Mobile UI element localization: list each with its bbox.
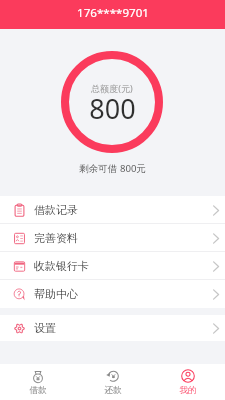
staticText: 我的 (179, 385, 197, 396)
button[interactable]: 设置 (0, 315, 225, 341)
button[interactable]: 帮助中心 (0, 280, 225, 308)
staticText: 总额度(元) (91, 82, 133, 94)
staticText: 借款 (29, 385, 47, 396)
button[interactable]: 收款银行卡 (0, 252, 225, 280)
staticText: 收款银行卡 (34, 259, 89, 273)
button[interactable]: 还款 (75, 364, 150, 400)
staticText: 设置 (34, 321, 56, 335)
staticText: 帮助中心 (34, 287, 78, 301)
staticText: 还款 (104, 385, 122, 396)
button[interactable]: 借款记录 (0, 196, 225, 224)
button[interactable]: 借款 (0, 364, 75, 400)
staticText: 176****9701 (77, 5, 149, 21)
button[interactable]: 完善资料 (0, 224, 225, 252)
staticText: 剩余可借 800元 (79, 162, 146, 175)
button[interactable]: 我的 (150, 364, 225, 400)
staticText: 借款记录 (34, 203, 78, 217)
staticText: 完善资料 (34, 231, 78, 245)
staticText: 800 (89, 90, 136, 127)
